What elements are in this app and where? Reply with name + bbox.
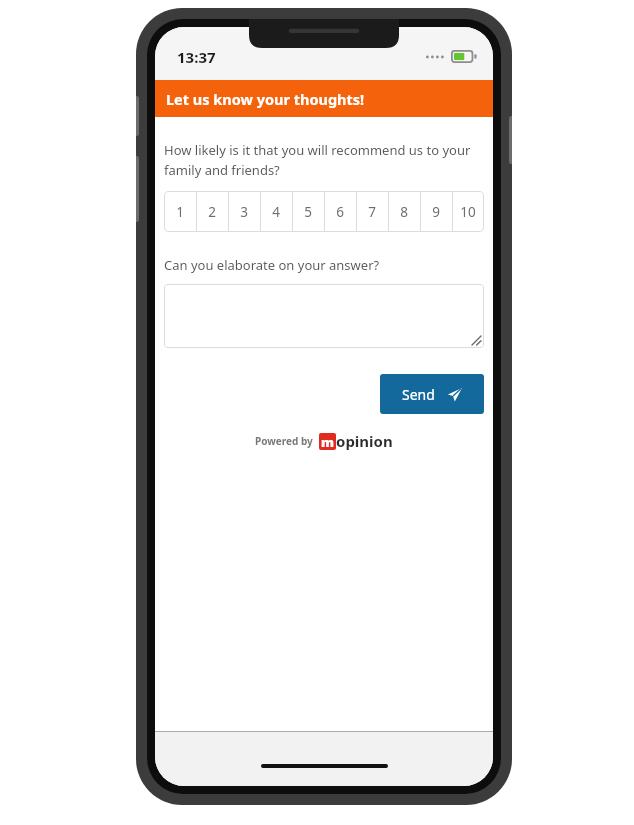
button[interactable] (164, 284, 484, 348)
button[interactable]: 8 (388, 191, 420, 232)
staticText: How likely is it that you will recommend… (164, 141, 484, 179)
staticText: Let us know your thoughts! (166, 89, 365, 109)
staticText: 8 (400, 203, 408, 221)
button[interactable]: 4 (260, 191, 292, 232)
staticText: Can you elaborate on your answer? (164, 256, 380, 274)
button[interactable]: 9 (420, 191, 452, 232)
staticText: m (321, 433, 335, 450)
staticText: 3 (240, 203, 248, 221)
staticText: Powered by (255, 434, 313, 448)
button[interactable]: 6 (324, 191, 356, 232)
button[interactable]: 10 (452, 191, 484, 232)
button[interactable]: 1 (164, 191, 196, 232)
button[interactable]: 7 (356, 191, 388, 232)
staticText: opinion (336, 431, 393, 451)
button[interactable]: 5 (292, 191, 324, 232)
staticText: 13:37 (177, 47, 216, 67)
staticText: 7 (368, 203, 376, 221)
staticText: 10 (460, 203, 476, 221)
button[interactable]: 3 (228, 191, 260, 232)
staticText: 9 (432, 203, 440, 221)
staticText: 1 (176, 203, 184, 221)
button[interactable]: Let us know your thoughts! (155, 80, 493, 117)
button[interactable]: Send (380, 374, 484, 414)
button[interactable]: 2 (196, 191, 228, 232)
staticText: 2 (208, 203, 216, 221)
staticText: 4 (272, 203, 280, 221)
staticText: Send (402, 385, 435, 404)
staticText: 6 (336, 203, 344, 221)
staticText: 5 (304, 203, 312, 221)
